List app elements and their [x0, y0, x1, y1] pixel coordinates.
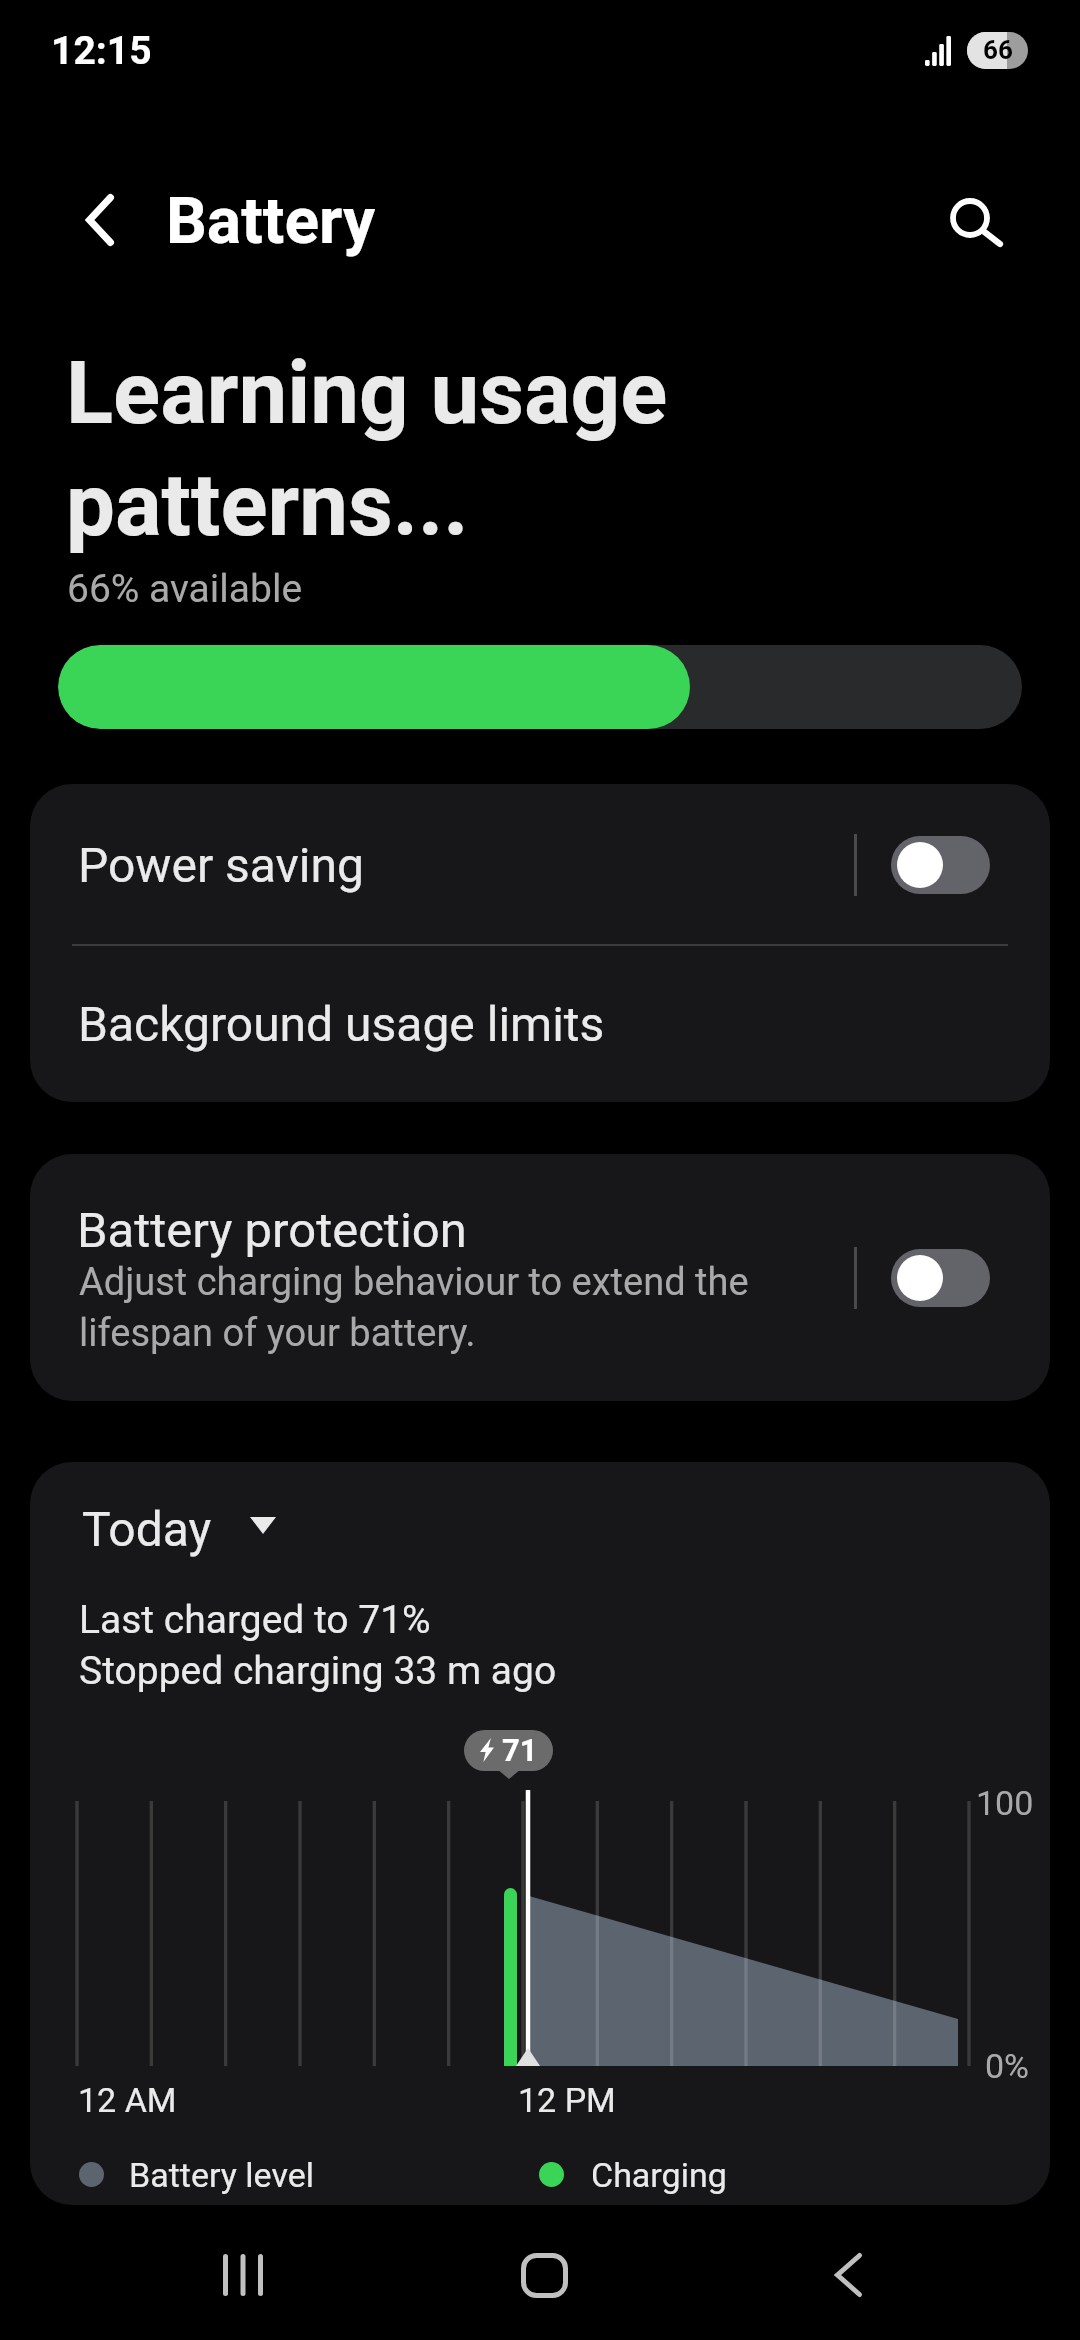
staticText: Today	[82, 1501, 212, 1557]
staticText: 100	[976, 1783, 1034, 1823]
button[interactable]: Back	[757, 2214, 937, 2340]
staticText: Battery	[166, 184, 376, 259]
button[interactable]: Battery protection	[30, 1154, 1050, 1401]
button[interactable]: Today	[76, 1498, 206, 1554]
button[interactable]: Home	[454, 2214, 634, 2340]
staticText: 66% available	[67, 566, 303, 612]
staticText: Charging	[591, 2155, 727, 2195]
staticText: Battery level	[129, 2155, 314, 2195]
staticText: Background usage limits	[78, 996, 605, 1052]
staticText: 12 PM	[518, 2080, 616, 2120]
button[interactable]: Power saving	[30, 784, 1050, 945]
staticText: 0%	[985, 2046, 1030, 2086]
button[interactable]: Battery protection, off	[891, 1249, 990, 1307]
button[interactable]: Background usage limits	[30, 945, 1050, 1102]
staticText: Last charged to 71% Stopped charging 33 …	[79, 1597, 557, 1694]
staticText: 66	[983, 35, 1013, 65]
staticText: Power saving	[78, 837, 364, 893]
staticText: 71	[502, 1732, 538, 1768]
button[interactable]: Navigate up	[29, 145, 169, 295]
button[interactable]: Recent apps	[153, 2214, 333, 2340]
staticText: 12:15	[51, 28, 152, 74]
staticText: Battery protection	[77, 1202, 467, 1259]
staticText: 12 AM	[78, 2080, 177, 2120]
button[interactable]: Power saving, off	[891, 836, 990, 894]
staticText: Learning usage patterns...	[66, 342, 668, 556]
button[interactable]: Search	[903, 145, 1043, 295]
staticText: Adjust charging behaviour to extend the …	[79, 1260, 749, 1355]
